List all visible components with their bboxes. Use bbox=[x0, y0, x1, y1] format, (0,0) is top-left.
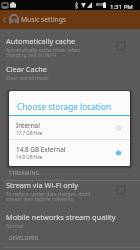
staticText: 85% bbox=[96, 2, 104, 7]
staticText: Clear stored music bbox=[6, 75, 49, 82]
staticText: Music settings bbox=[21, 15, 67, 24]
staticText: 17.7 GB free bbox=[16, 130, 43, 136]
staticText: Clear Cache bbox=[6, 64, 47, 74]
staticText: Stream via Wi-Fi only bbox=[6, 180, 79, 190]
staticText: Choose storage location bbox=[17, 101, 112, 112]
button[interactable]: Stream via Wi-Fi only bbox=[0, 179, 140, 207]
button[interactable]: Mobile networks stream quality bbox=[0, 211, 140, 231]
staticText: 14.8 GB External bbox=[16, 145, 66, 154]
button[interactable]: Automatically cache bbox=[0, 35, 140, 63]
staticText: Automatically cache bbox=[6, 36, 76, 46]
staticText: 1:31 PM bbox=[110, 2, 133, 10]
button[interactable]: Internal bbox=[9, 116, 130, 140]
button[interactable]: Clear Cache bbox=[0, 63, 140, 83]
staticText: DEVELOPER bbox=[9, 235, 39, 242]
staticText: Mobile networks stream quality bbox=[6, 212, 116, 222]
staticText: Normal bbox=[6, 223, 24, 230]
button[interactable]: 14.8 GB External bbox=[9, 140, 130, 166]
button[interactable]: Toggle Stream via Wi-Fi only bbox=[117, 186, 125, 194]
button[interactable]: Toggle Automatically cache bbox=[117, 42, 125, 50]
staticText: Internal bbox=[16, 121, 40, 130]
staticText: To reduce carrier data charges, don't st… bbox=[6, 191, 91, 203]
staticText: STREAMING bbox=[9, 170, 40, 177]
staticText: Automatically cache music when charging … bbox=[6, 47, 81, 59]
staticText: 14.8 GB free bbox=[16, 154, 43, 160]
button[interactable]: Navigate up bbox=[0, 13, 8, 26]
